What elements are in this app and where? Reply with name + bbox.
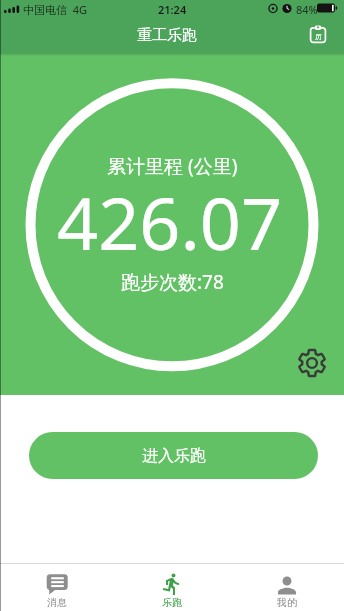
button[interactable]: 历 (305, 21, 331, 47)
staticText: 21:24 (158, 2, 187, 17)
staticText: 消息 (47, 596, 67, 609)
staticText: 累计里程 (公里) (107, 153, 238, 179)
staticText: 乐跑 (162, 596, 182, 609)
staticText: 历 (315, 32, 322, 41)
button[interactable] (295, 346, 329, 380)
button[interactable]: 我的 (229, 564, 344, 611)
staticText: 我的 (277, 596, 297, 609)
staticText: 中国电信 4G (23, 2, 88, 17)
staticText: 84% (296, 2, 318, 17)
staticText: 重工乐跑 (137, 26, 197, 45)
button[interactable]: 消息 (0, 564, 114, 611)
staticText: 进入乐跑 (142, 446, 206, 466)
button[interactable]: 进入乐跑 (29, 432, 318, 479)
button[interactable]: 乐跑 (114, 564, 229, 611)
staticText: 426.07 (57, 173, 283, 263)
staticText: 跑步次数:78 (121, 269, 224, 295)
